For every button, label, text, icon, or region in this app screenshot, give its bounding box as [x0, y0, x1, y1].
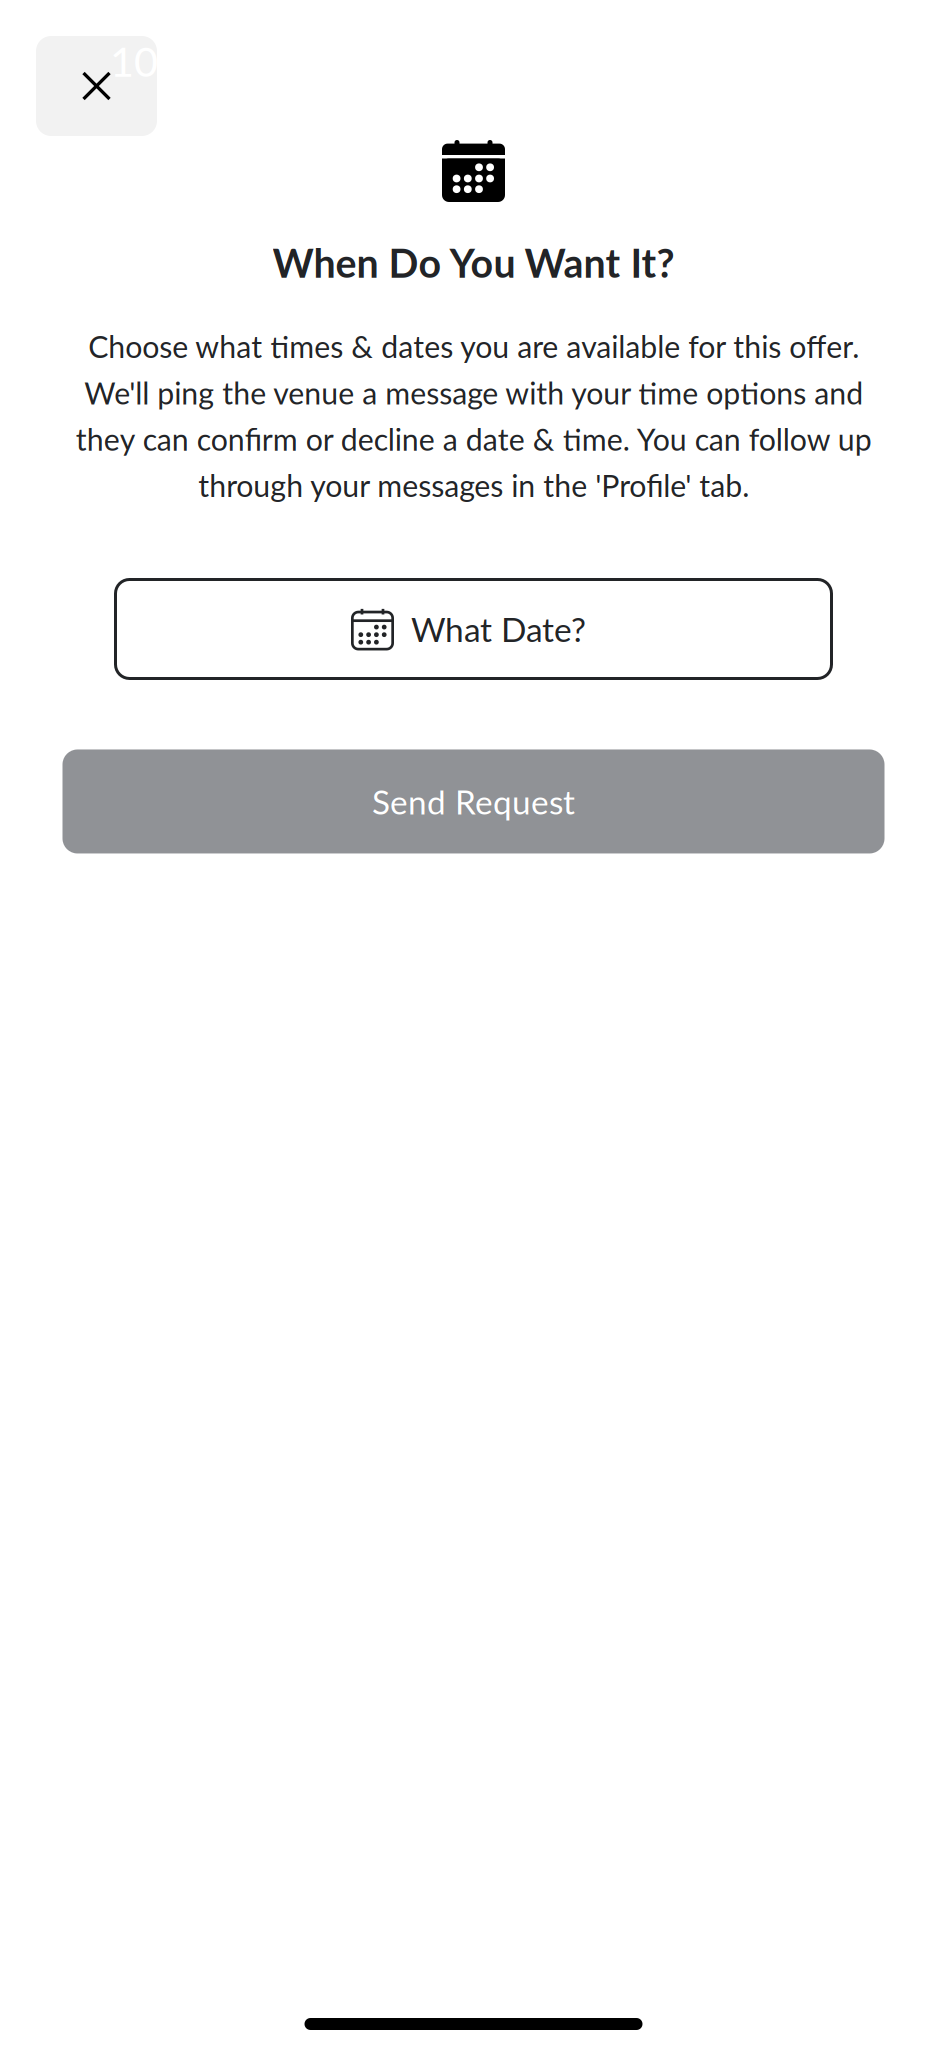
- staticText: 10: [110, 36, 158, 86]
- staticText: Send Request: [372, 781, 575, 821]
- button[interactable]: Send Request: [62, 749, 884, 853]
- staticText: When Do You Want It?: [272, 239, 674, 286]
- staticText: What Date?: [411, 609, 586, 649]
- button[interactable]: Close: [36, 36, 157, 136]
- staticText: Choose what times & dates you are availa…: [75, 328, 871, 503]
- button[interactable]: What Date?: [115, 579, 831, 678]
